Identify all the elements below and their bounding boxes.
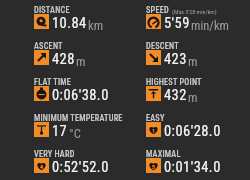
- staticText: 5'59: [164, 15, 190, 32]
- button[interactable]: HIGHEST POINT: [146, 75, 246, 101]
- button[interactable]: SPEED: [146, 3, 246, 29]
- staticText: m: [188, 54, 198, 69]
- staticText: VERY HARD: [34, 149, 75, 159]
- staticText: m: [188, 90, 198, 105]
- staticText: 423: [164, 51, 187, 68]
- staticText: 428: [52, 51, 75, 68]
- staticText: FLAT TIME: [34, 77, 72, 87]
- button[interactable]: DISTANCE: [34, 3, 142, 29]
- button[interactable]: FLAT TIME: [34, 75, 142, 101]
- staticText: DESCENT: [146, 41, 179, 51]
- staticText: km: [88, 18, 104, 33]
- staticText: HIGHEST POINT: [146, 77, 202, 87]
- staticText: (Max 3'28 min/km): [172, 8, 217, 15]
- button[interactable]: VERY HARD: [34, 147, 142, 173]
- button[interactable]: EASY: [146, 111, 246, 137]
- staticText: ASCENT: [34, 41, 63, 51]
- staticText: 10.84: [52, 15, 87, 32]
- button[interactable]: ASCENT: [34, 39, 142, 65]
- staticText: DISTANCE: [34, 5, 70, 15]
- staticText: °C: [69, 126, 81, 141]
- staticText: EASY: [146, 113, 165, 123]
- staticText: MAXIMAL: [146, 149, 181, 159]
- staticText: m: [76, 54, 86, 69]
- staticText: 1: [152, 127, 156, 134]
- staticText: 5: [152, 163, 156, 170]
- button[interactable]: MINIMUM TEMPERATURE: [34, 111, 142, 137]
- button[interactable]: MAXIMAL: [146, 147, 246, 173]
- staticText: 432: [164, 87, 187, 104]
- staticText: min/km: [191, 18, 230, 33]
- staticText: MINIMUM TEMPERATURE: [34, 113, 123, 123]
- staticText: 0:06'38.0: [52, 87, 109, 104]
- staticText: SPEED: [146, 5, 169, 15]
- staticText: 0:01'34.0: [164, 159, 221, 176]
- staticText: 17: [52, 123, 68, 140]
- button[interactable]: DESCENT: [146, 39, 246, 65]
- staticText: 4: [40, 163, 44, 170]
- staticText: 0:52'52.0: [52, 159, 109, 176]
- staticText: 0:06'28.0: [164, 123, 221, 140]
